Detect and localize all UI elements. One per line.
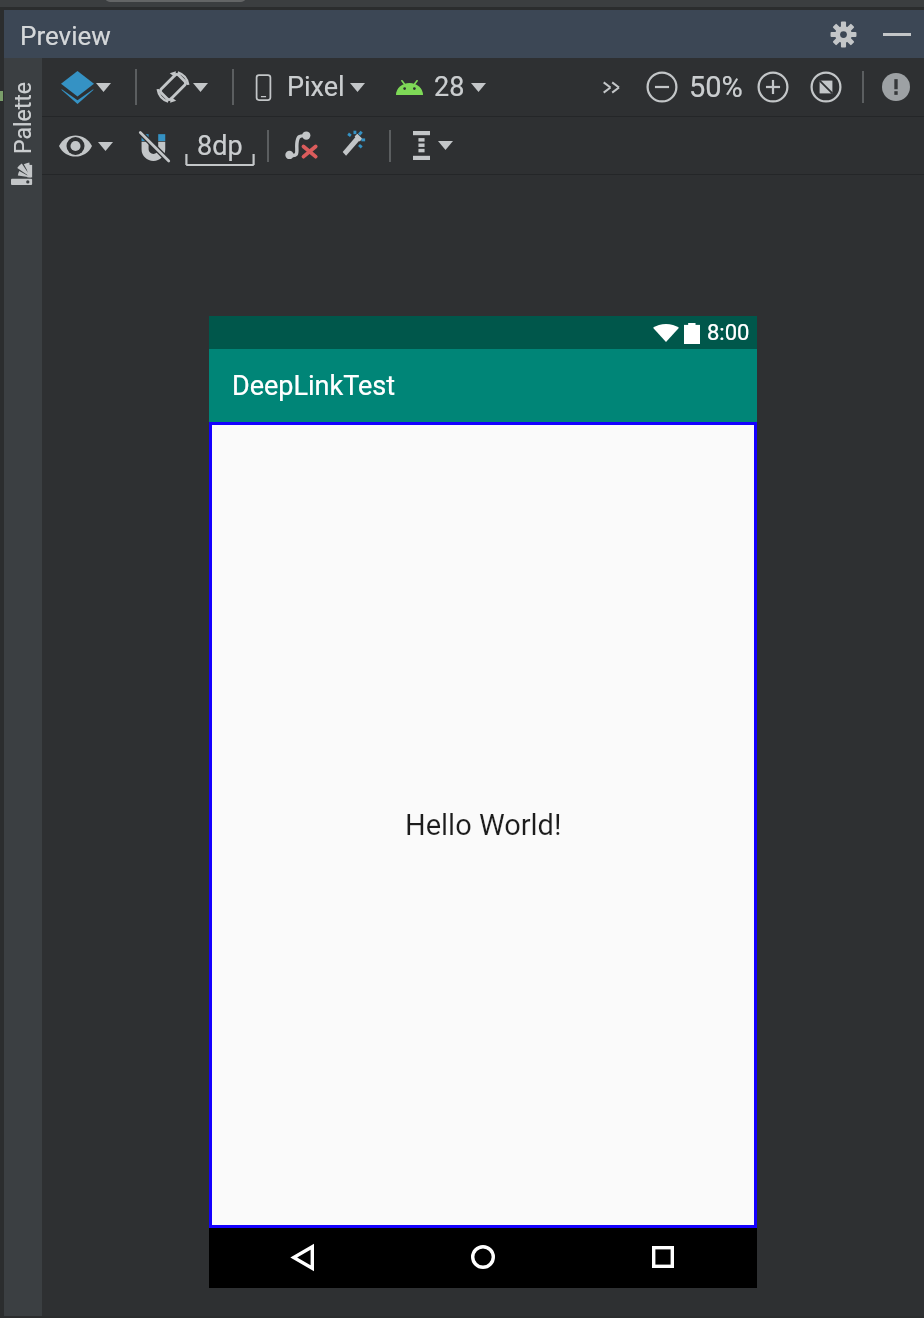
button[interactable]: Minimize <box>879 16 915 52</box>
button[interactable]: Palette <box>4 158 42 192</box>
button[interactable] <box>55 126 117 166</box>
button[interactable]: Zoom out <box>646 71 678 103</box>
button[interactable]: Recents <box>574 1228 757 1288</box>
staticText: Pixel <box>287 71 345 103</box>
button[interactable]: 28 <box>390 67 492 107</box>
button[interactable]: Home <box>391 1228 574 1288</box>
button[interactable]: Zoom to fit <box>810 71 842 103</box>
staticText: Palette <box>10 82 37 154</box>
button[interactable]: Back <box>209 1228 391 1288</box>
button[interactable]: Turn off autoconnect <box>138 129 172 163</box>
button[interactable]: DeepLinkTest <box>209 349 757 422</box>
staticText: DeepLinkTest <box>232 370 396 402</box>
button[interactable]: 8dp <box>185 124 255 168</box>
staticText: Preview <box>20 21 111 51</box>
button[interactable]: Pixel <box>250 67 371 107</box>
button[interactable] <box>55 65 117 110</box>
button[interactable]: Issues <box>879 70 913 104</box>
button[interactable]: Clear all constraints <box>283 128 319 164</box>
button[interactable] <box>409 127 457 164</box>
button[interactable] <box>150 66 214 108</box>
button[interactable]: More actions <box>595 71 627 103</box>
button[interactable]: Infer constraints <box>341 128 377 164</box>
staticText: 28 <box>434 71 465 103</box>
staticText: Hello World! <box>405 808 562 842</box>
staticText: 50% <box>689 70 743 104</box>
button[interactable]: Settings <box>825 16 861 52</box>
staticText: 8dp <box>197 130 243 162</box>
staticText: 8:00 <box>707 320 750 346</box>
button[interactable] <box>105 0 246 2</box>
button[interactable]: Zoom in <box>757 71 789 103</box>
button[interactable]: Palette <box>4 70 42 166</box>
